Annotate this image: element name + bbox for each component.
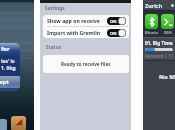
- staticText: No M: [159, 73, 175, 81]
- button[interactable]: App: [11, 116, 26, 130]
- staticText: 1. 0kg: [1, 65, 16, 72]
- staticText: SSH: [164, 30, 172, 36]
- button[interactable]: ON: [107, 29, 126, 37]
- button[interactable]: Show app on receive: [43, 15, 129, 26]
- staticText: Settings: [45, 5, 65, 12]
- staticText: Show app on receive: [47, 17, 107, 24]
- button[interactable]: Import with Gremlin: [43, 27, 129, 38]
- staticText: Import with Gremlin: [47, 29, 107, 36]
- staticText: ccept: [0, 78, 10, 86]
- button[interactable]: SSH: [161, 14, 174, 29]
- staticText: 01. Big Time.mp3: [145, 40, 173, 46]
- staticText: ON: [110, 19, 117, 24]
- staticText: Ready to receive files: [61, 61, 111, 67]
- staticText: Received 1.3 MB of 4.1 MB: [145, 53, 173, 59]
- staticText: Status: [46, 44, 62, 51]
- staticText: Zurich: [145, 2, 163, 9]
- staticText: Bluetooth: [145, 30, 158, 36]
- staticText: fer: [1, 45, 10, 53]
- button[interactable]: ccept: [0, 76, 20, 88]
- staticText: ies' is: [1, 58, 15, 65]
- button[interactable]: ON: [107, 17, 126, 25]
- button[interactable]: Bluetooth: [145, 14, 158, 29]
- staticText: ON: [110, 31, 117, 36]
